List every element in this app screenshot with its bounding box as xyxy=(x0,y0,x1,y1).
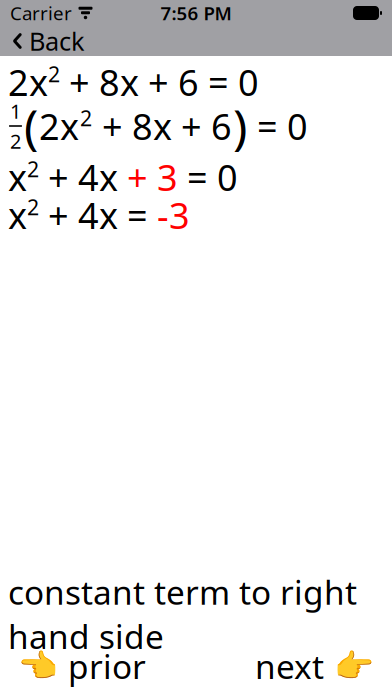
staticText: 7:56 PM xyxy=(160,1,231,25)
staticText: + 4x = xyxy=(39,191,157,239)
staticText: 2 xyxy=(27,193,39,221)
staticText: x xyxy=(8,153,27,201)
staticText: 👈 xyxy=(18,648,58,684)
button[interactable]: Back xyxy=(0,26,99,56)
staticText: Back xyxy=(29,24,85,58)
staticText: + 3 xyxy=(127,153,178,201)
staticText: 2x xyxy=(39,102,79,150)
staticText: + 8x + 6 = 0 xyxy=(60,58,259,106)
staticText: 2x xyxy=(8,58,48,106)
staticText: -3 xyxy=(157,191,190,239)
staticText: prior xyxy=(68,644,146,688)
staticText: next xyxy=(255,644,324,688)
staticText: = 0 xyxy=(248,102,308,150)
staticText: 2 xyxy=(80,104,92,132)
staticText: 2 xyxy=(27,155,39,183)
staticText: + 8x + 6 xyxy=(93,102,232,150)
staticText: 👉 xyxy=(334,648,374,684)
button[interactable]: next xyxy=(241,636,388,696)
staticText: 1 xyxy=(10,98,21,124)
staticText: 2 xyxy=(48,60,60,88)
button[interactable]: 👈 xyxy=(4,636,160,696)
staticText: ) xyxy=(233,94,247,158)
staticText: = 0 xyxy=(178,153,238,201)
staticText: + 4x xyxy=(39,153,127,201)
staticText: Carrier xyxy=(10,1,72,25)
staticText: x xyxy=(8,191,27,239)
staticText: 2 xyxy=(10,128,21,154)
staticText: constant term to right hand side xyxy=(8,570,357,658)
staticText: ( xyxy=(24,94,38,158)
